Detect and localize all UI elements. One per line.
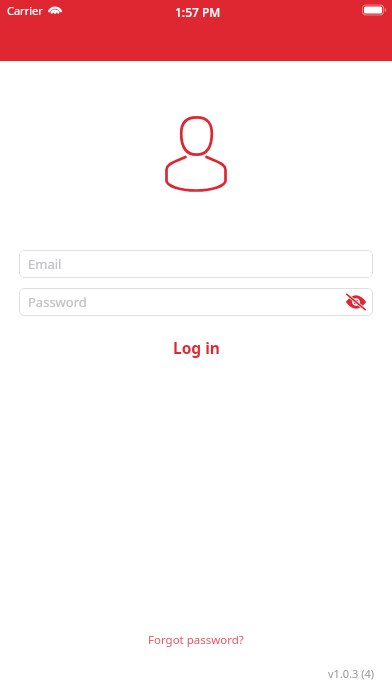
staticText: Carrier [7,3,43,16]
other: User avatar [165,116,227,192]
staticText: v1.0.3 (4) [328,666,375,681]
staticText: Email [28,255,62,273]
button[interactable]: Forgot password? [148,629,244,651]
staticText: Forgot password? [148,632,244,648]
staticText: Log in [173,337,220,358]
other: Wi-Fi [47,4,63,15]
button[interactable]: Log in [19,336,373,358]
button[interactable]: Email [19,250,373,278]
staticText: Password [28,293,87,311]
button[interactable]: Show password [343,289,369,315]
staticText: 1:57 PM [175,4,221,17]
button[interactable]: Password [19,288,373,316]
other: Battery full [362,4,387,16]
